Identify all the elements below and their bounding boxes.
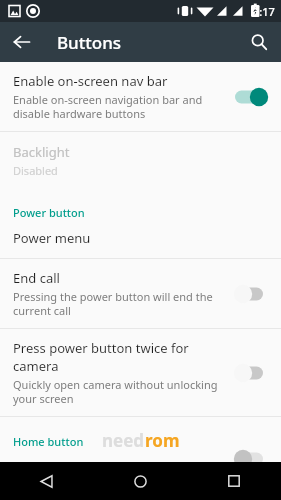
staticText: rom bbox=[145, 429, 180, 452]
staticText: need bbox=[102, 429, 145, 452]
button[interactable]: Enable on-screen nav bar bbox=[0, 62, 281, 131]
button[interactable]: Recents bbox=[187, 462, 281, 500]
staticText: Buttons bbox=[57, 31, 122, 54]
staticText: Enable on-screen nav bar bbox=[13, 72, 168, 90]
staticText: Enable on-screen navigation bar and disa… bbox=[13, 92, 225, 121]
button[interactable]: Home bbox=[93, 462, 187, 500]
button[interactable]: Search bbox=[243, 26, 275, 58]
button[interactable]: Toggle bbox=[231, 360, 271, 386]
staticText: Disabled bbox=[13, 163, 58, 178]
staticText: Backlight bbox=[13, 143, 70, 161]
button[interactable]: Power menu bbox=[0, 222, 281, 258]
staticText: End call bbox=[13, 269, 60, 287]
staticText: Press power button twice for camera bbox=[13, 339, 225, 375]
button[interactable]: Answer call bbox=[0, 451, 281, 462]
button[interactable]: Back bbox=[6, 26, 38, 58]
button[interactable]: Toggle bbox=[231, 281, 271, 307]
button[interactable]: Back bbox=[0, 462, 93, 500]
button[interactable]: Backlight bbox=[0, 132, 281, 189]
button[interactable]: Toggle bbox=[231, 84, 271, 110]
button[interactable]: Press power button twice for camera bbox=[0, 329, 281, 416]
staticText: Power button bbox=[13, 205, 85, 220]
staticText: Home button bbox=[13, 434, 84, 449]
staticText: Pressing the power button will end the c… bbox=[13, 289, 225, 318]
staticText: Power menu bbox=[13, 229, 91, 247]
staticText: 3:17 bbox=[253, 4, 275, 19]
staticText: Quickly open camera without unlocking yo… bbox=[13, 377, 225, 406]
button[interactable]: End call bbox=[0, 259, 281, 328]
